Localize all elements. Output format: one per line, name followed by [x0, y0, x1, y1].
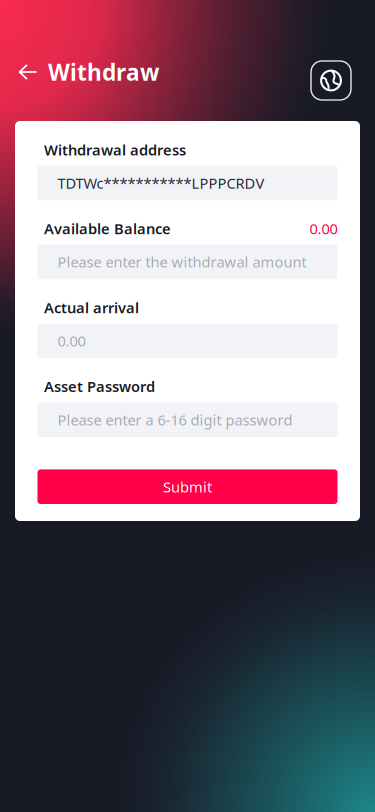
staticText: Actual arrival	[44, 298, 139, 317]
button[interactable]: Language	[311, 61, 351, 100]
staticText: Available Balance	[44, 219, 171, 238]
staticText: Withdrawal address	[44, 140, 186, 159]
staticText: Submit	[163, 477, 212, 496]
staticText: Please enter the withdrawal amount	[57, 252, 306, 272]
staticText: Withdraw	[48, 57, 159, 87]
staticText: Please enter a 6-16 digit password	[57, 410, 292, 429]
staticText: 0.00	[309, 219, 337, 238]
button[interactable]: Submit	[37, 469, 337, 504]
staticText: 0.00	[57, 331, 85, 351]
staticText: TDTWc***********LPPPCRDV	[57, 173, 264, 193]
button[interactable]: Withdraw	[18, 55, 159, 89]
staticText: Asset Password	[44, 377, 155, 396]
